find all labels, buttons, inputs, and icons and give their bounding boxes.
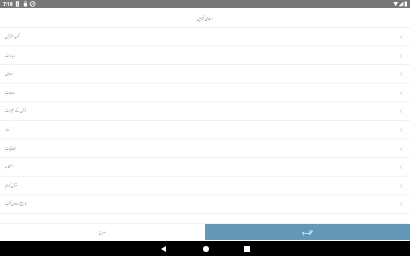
- button[interactable]: دعائیں: [0, 64, 410, 83]
- button[interactable]: زیارات: [0, 46, 410, 65]
- staticText: اخلاقیات: [5, 144, 17, 153]
- button[interactable]: Recent apps: [233, 241, 260, 256]
- staticText: مناجات: [5, 88, 16, 97]
- staticText: دعائیں: [5, 69, 13, 78]
- button[interactable]: تفسیر القرآن: [0, 27, 410, 46]
- staticText: ٹھیک ہے: [302, 228, 313, 236]
- button[interactable]: قرآن کے معجزات: [0, 101, 410, 120]
- button[interactable]: نماز: [0, 120, 410, 139]
- staticText: استخارہ: [5, 162, 14, 171]
- button[interactable]: مناجات: [0, 83, 410, 102]
- staticText: 7:18: [3, 1, 13, 8]
- button[interactable]: تاریخ اسلامی کتب: [0, 194, 410, 213]
- staticText: اسلامی کتابیں: [197, 13, 213, 22]
- button[interactable]: Home: [192, 241, 219, 256]
- staticText: قرآن کریم: [5, 181, 17, 190]
- button[interactable]: Back: [150, 241, 177, 256]
- button[interactable]: اخلاقیات: [0, 139, 410, 158]
- staticText: تاریخ اسلامی کتب: [5, 199, 27, 208]
- staticText: نماز: [5, 125, 10, 134]
- button[interactable]: استخارہ: [0, 157, 410, 176]
- staticText: قرآن کے معجزات: [5, 106, 27, 115]
- staticText: منسوخ: [99, 228, 106, 236]
- staticText: زیارات: [5, 51, 15, 60]
- button[interactable]: قرآن کریم: [0, 176, 410, 195]
- staticText: تفسیر القرآن: [5, 32, 20, 41]
- button[interactable]: ٹھیک ہے: [205, 224, 410, 240]
